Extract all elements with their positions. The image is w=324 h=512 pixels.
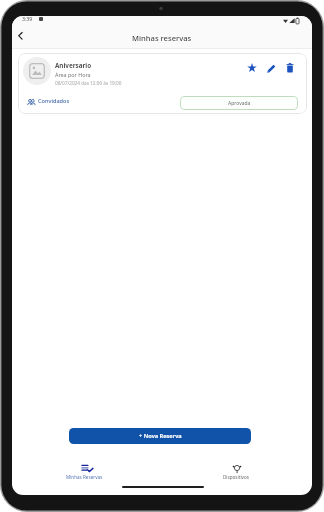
staticText: + Nova Reserva: [139, 432, 182, 440]
staticText: 08/07/2024 das 12:00 às 19:00: [55, 80, 122, 86]
button[interactable]: Aniversario: [18, 53, 307, 114]
button[interactable]: Dispositivos: [186, 460, 286, 484]
button[interactable]: [245, 61, 259, 75]
staticText: Minhas Reservas: [66, 474, 103, 480]
button[interactable]: [264, 61, 278, 75]
staticText: Minhas reservas: [132, 33, 192, 43]
button[interactable]: Aprovada: [180, 96, 298, 110]
button[interactable]: [14, 28, 28, 44]
button[interactable]: + Nova Reserva: [69, 428, 251, 444]
button[interactable]: Minhas Reservas: [34, 460, 134, 484]
button[interactable]: Convidados: [24, 94, 84, 108]
button[interactable]: [283, 61, 297, 75]
staticText: Área por Hora: [55, 71, 91, 78]
staticText: Dispositivos: [223, 474, 249, 480]
staticText: Aprovada: [228, 100, 251, 107]
staticText: 3:39: [22, 16, 33, 22]
staticText: Convidados: [38, 97, 70, 105]
staticText: Aniversario: [55, 61, 92, 70]
